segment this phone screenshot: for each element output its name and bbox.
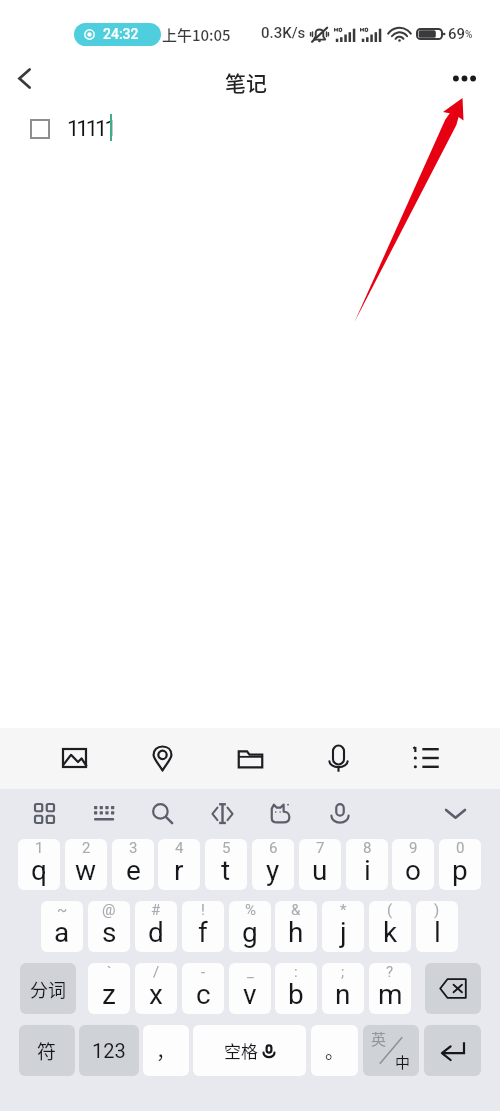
staticText: r: [174, 854, 184, 887]
button[interactable]: Hide keyboard: [434, 792, 476, 834]
button[interactable]: 。: [311, 1025, 358, 1076]
staticText: v: [243, 978, 257, 1011]
staticText: `: [107, 963, 112, 981]
button[interactable]: 分词: [20, 963, 76, 1014]
button[interactable]: 123: [79, 1025, 139, 1076]
button[interactable]: @: [88, 901, 130, 952]
staticText: e: [126, 854, 141, 887]
button[interactable]: (: [369, 901, 411, 952]
button[interactable]: 5: [205, 839, 247, 890]
button[interactable]: 6: [252, 839, 294, 890]
button[interactable]: 符: [19, 1025, 75, 1076]
staticText: (: [387, 901, 393, 919]
staticText: i: [364, 854, 371, 887]
staticText: &: [291, 901, 301, 919]
button[interactable]: ): [416, 901, 458, 952]
button[interactable]: 9: [392, 839, 434, 890]
staticText: 4: [175, 839, 184, 857]
button[interactable]: Enter: [424, 1025, 481, 1076]
button[interactable]: Voice input: [319, 792, 361, 834]
staticText: 0: [456, 839, 465, 857]
staticText: f: [198, 916, 208, 949]
staticText: s: [102, 916, 117, 949]
button[interactable]: Folder: [224, 729, 276, 787]
staticText: ;: [341, 963, 345, 981]
staticText: %: [465, 29, 473, 41]
staticText: 24:32: [103, 26, 139, 42]
button[interactable]: _: [229, 963, 271, 1014]
button[interactable]: 空格: [193, 1025, 306, 1076]
button[interactable]: 4: [158, 839, 200, 890]
staticText: l: [434, 916, 441, 949]
staticText: %: [245, 901, 256, 919]
staticText: 上午10:05: [162, 24, 231, 46]
button[interactable]: 11111: [30, 116, 114, 142]
button[interactable]: &: [275, 901, 317, 952]
staticText: 1: [35, 839, 44, 857]
button[interactable]: 2: [65, 839, 107, 890]
button[interactable]: Insert image: [48, 729, 100, 787]
staticText: d: [148, 916, 164, 949]
button[interactable]: *: [322, 901, 364, 952]
button[interactable]: Recording 24:32: [74, 23, 161, 46]
staticText: n: [335, 978, 351, 1011]
button[interactable]: Move cursor: [201, 792, 243, 834]
button[interactable]: Apps: [23, 792, 65, 834]
button[interactable]: Voice: [312, 729, 364, 787]
staticText: 英: [371, 1028, 387, 1050]
staticText: 3: [129, 839, 138, 857]
staticText: 笔记: [225, 67, 267, 97]
staticText: @: [102, 901, 116, 919]
button[interactable]: ~: [41, 901, 83, 952]
button[interactable]: Checklist: [400, 729, 452, 787]
button[interactable]: Location: [136, 729, 188, 787]
button[interactable]: Switch language: [363, 1025, 419, 1076]
button[interactable]: Stickers: [260, 792, 302, 834]
staticText: t: [221, 854, 231, 887]
button[interactable]: ;: [322, 963, 364, 1014]
staticText: 符: [37, 1037, 57, 1065]
button[interactable]: 7: [299, 839, 341, 890]
staticText: /: [153, 963, 160, 981]
staticText: 0.3K/s: [261, 24, 306, 42]
staticText: #: [151, 901, 161, 919]
button[interactable]: 0: [439, 839, 481, 890]
staticText: m: [378, 978, 403, 1011]
button[interactable]: Backspace: [425, 963, 481, 1014]
button[interactable]: More options: [442, 56, 486, 100]
staticText: 分词: [30, 976, 66, 1002]
staticText: c: [196, 978, 211, 1011]
staticText: ): [434, 901, 440, 919]
staticText: 7: [316, 839, 325, 857]
button[interactable]: :: [275, 963, 317, 1014]
button[interactable]: #: [135, 901, 177, 952]
button[interactable]: Keyboard layout: [83, 792, 125, 834]
staticText: j: [340, 916, 347, 949]
staticText: 9: [409, 839, 418, 857]
button[interactable]: !: [182, 901, 224, 952]
staticText: x: [149, 978, 163, 1011]
staticText: g: [242, 916, 258, 949]
button[interactable]: ，: [143, 1025, 189, 1076]
staticText: _: [247, 963, 254, 981]
staticText: 123: [92, 1039, 126, 1062]
button[interactable]: 1: [18, 839, 60, 890]
button[interactable]: 3: [112, 839, 154, 890]
button[interactable]: -: [182, 963, 224, 1014]
staticText: 中: [395, 1051, 411, 1073]
staticText: u: [312, 854, 328, 887]
button[interactable]: 8: [346, 839, 388, 890]
button[interactable]: /: [135, 963, 177, 1014]
button[interactable]: `: [88, 963, 130, 1014]
staticText: -: [201, 963, 206, 981]
staticText: *: [340, 901, 347, 919]
staticText: y: [266, 854, 280, 887]
button[interactable]: Search: [141, 792, 183, 834]
staticText: o: [405, 854, 421, 887]
button[interactable]: ?: [369, 963, 411, 1014]
button[interactable]: %: [229, 901, 271, 952]
staticText: 8: [363, 839, 372, 857]
staticText: 2: [82, 839, 91, 857]
button[interactable]: Back: [2, 56, 46, 100]
staticText: p: [452, 854, 468, 887]
